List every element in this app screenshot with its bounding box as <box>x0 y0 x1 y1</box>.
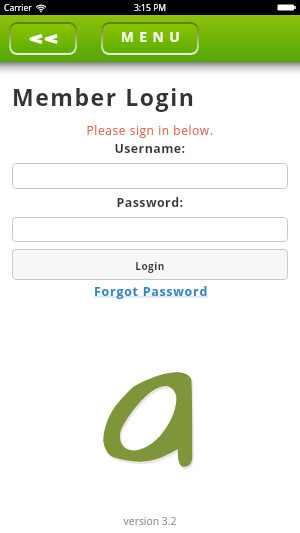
staticText: version 3.2 <box>0 514 300 528</box>
staticText: Login <box>12 259 288 273</box>
staticText: Forgot Password <box>91 283 211 300</box>
staticText: MENU <box>104 27 199 46</box>
staticText: 3:15 PM <box>0 2 300 14</box>
button[interactable]: MENU <box>101 22 199 55</box>
button[interactable]: Username field <box>12 163 288 189</box>
staticText: Member Login <box>12 81 196 112</box>
staticText: Password: <box>0 194 300 211</box>
button[interactable]: Password field <box>12 217 288 242</box>
button[interactable]: Login <box>12 249 288 280</box>
staticText: Please sign in below. <box>0 122 300 138</box>
button[interactable]: Back <box>9 22 77 55</box>
staticText: Username: <box>0 140 300 157</box>
button[interactable]: Forgot Password <box>91 283 211 301</box>
staticText: Carrier <box>4 2 32 14</box>
